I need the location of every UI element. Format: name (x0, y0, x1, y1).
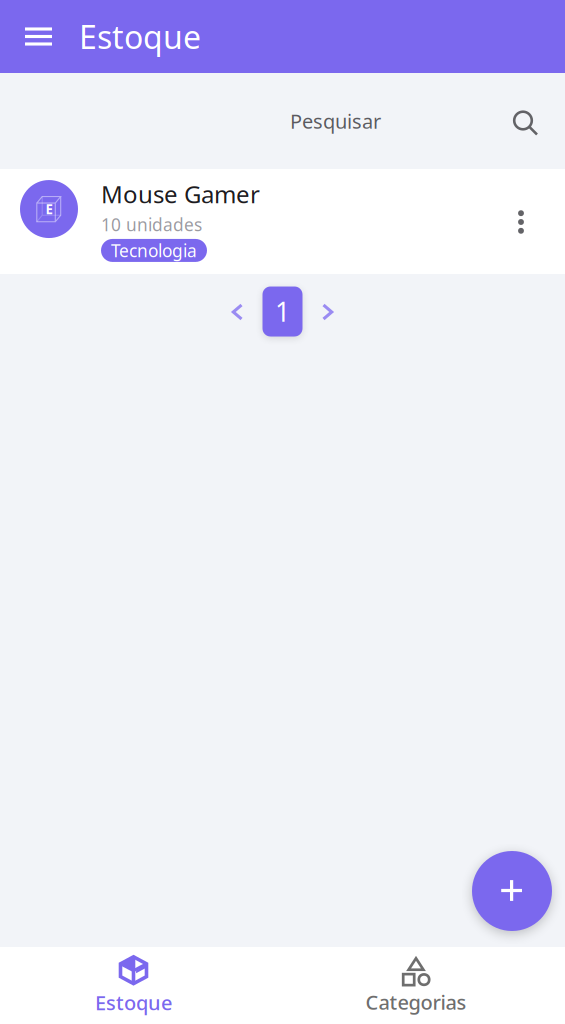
button[interactable]: Categorias (267, 947, 565, 1024)
button[interactable]: Add item (472, 851, 552, 931)
staticText: Categorias (365, 989, 466, 1015)
staticText: Estoque (79, 15, 201, 58)
button[interactable]: Search (500, 94, 565, 147)
staticText: E (45, 200, 52, 218)
button[interactable]: Previous page (222, 285, 252, 338)
button[interactable]: More options (498, 199, 544, 245)
staticText: 10 unidades (101, 213, 202, 236)
staticText: Pesquisar (290, 108, 381, 134)
button[interactable]: Next page (312, 285, 342, 338)
button[interactable]: E (0, 169, 498, 274)
staticText: 1 (275, 294, 290, 329)
button[interactable]: 1 (262, 286, 302, 336)
button[interactable]: Menu (0, 10, 79, 63)
staticText: Estoque (95, 989, 172, 1016)
staticText: Tecnologia (111, 239, 197, 262)
staticText: Mouse Gamer (101, 178, 260, 210)
button[interactable]: Estoque (0, 947, 267, 1024)
